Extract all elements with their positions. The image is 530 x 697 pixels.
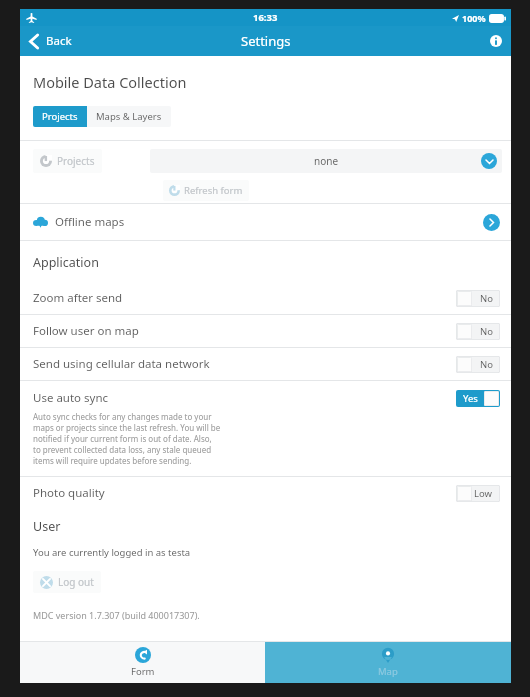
button[interactable]: Offline maps [20,204,511,240]
button[interactable]: Photo quality [20,477,511,509]
button[interactable]: No [456,356,500,373]
staticText: Use auto sync [33,390,109,406]
staticText: Projects [57,154,95,168]
staticText: Application [33,254,99,271]
button[interactable]: Yes [456,390,500,407]
staticText: Send using cellular data network [33,356,210,372]
staticText: Settings [241,32,291,50]
staticText: Offline maps [55,214,125,230]
staticText: User [33,518,61,535]
staticText: No [480,325,493,338]
staticText: Mobile Data Collection [33,72,187,92]
button[interactable]: Map [265,642,511,683]
staticText: Refresh form [184,184,243,197]
button[interactable]: No [456,290,500,307]
staticText: You are currently logged in as testa [33,546,191,559]
staticText: Follow user on map [33,323,139,339]
staticText: Yes [463,392,478,405]
button[interactable]: Maps & Layers [87,106,171,127]
staticText: 100% [462,12,486,24]
staticText: Auto sync checks for any changes made to… [33,411,221,466]
button[interactable]: No [456,323,500,340]
staticText: No [480,292,493,305]
staticText: Photo quality [33,485,105,501]
button[interactable]: Send using cellular data network [20,348,511,380]
button[interactable]: Follow user on map [20,315,511,347]
staticText: Maps & Layers [96,110,162,123]
staticText: Low [474,487,493,500]
staticText: No [480,358,493,371]
button[interactable]: Projects [33,149,102,173]
staticText: Map [378,665,398,678]
button[interactable]: Form [20,642,265,683]
staticText: none [314,154,339,168]
staticText: 16:33 [253,11,278,24]
staticText: MDC version 1.7.307 (build 400017307). [33,609,200,621]
staticText: Projects [42,110,78,123]
button[interactable]: Back [20,28,82,54]
button[interactable]: none [150,149,502,173]
button[interactable]: Information [481,29,511,53]
staticText: Back [46,33,72,49]
staticText: Log out [58,575,94,589]
button[interactable]: Zoom after send [20,282,511,314]
button[interactable]: Refresh form [163,180,249,201]
button[interactable]: Projects [33,106,87,127]
staticText: Form [131,665,155,678]
button[interactable]: Low [456,485,500,502]
staticText: Zoom after send [33,290,123,306]
button[interactable]: Log out [33,571,101,593]
